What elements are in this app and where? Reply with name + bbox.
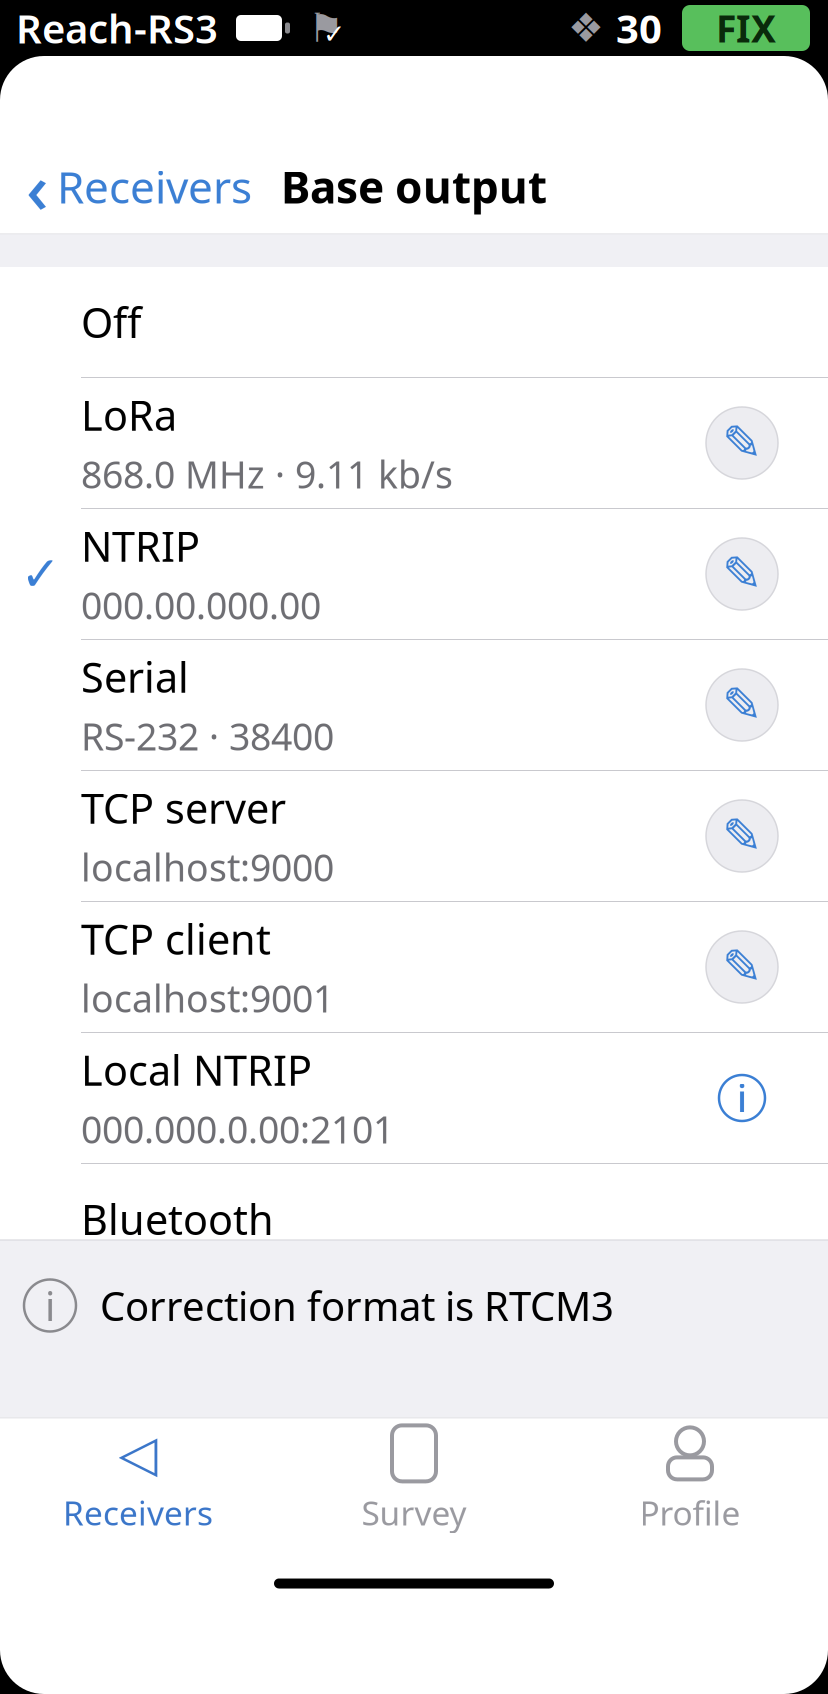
button[interactable]: ✓ <box>0 509 828 639</box>
staticText: ⚑ <box>308 5 344 51</box>
button[interactable]: Receivers <box>0 1418 276 1540</box>
staticText: Bluetooth <box>81 1192 274 1246</box>
staticText: i <box>737 1073 747 1123</box>
staticText: ✓ <box>20 547 60 601</box>
staticText: Survey <box>361 1490 466 1535</box>
staticText: ❖ <box>568 5 604 51</box>
staticText: localhost:9001 <box>81 973 334 1023</box>
button[interactable]: Off <box>0 267 828 377</box>
button[interactable]: LoRa <box>0 378 828 508</box>
staticText: Correction format is RTCM3 <box>100 1279 614 1332</box>
staticText: Serial <box>81 649 189 704</box>
staticText: Profile <box>639 1490 740 1535</box>
button[interactable]: Profile <box>552 1418 828 1540</box>
staticText: i <box>45 1279 55 1332</box>
staticText: ‹ <box>26 140 49 233</box>
staticText: ✎ <box>722 940 762 994</box>
button[interactable]: Serial <box>0 640 828 770</box>
staticText: 000.00.000.00 <box>81 580 321 630</box>
staticText: RS-232 · 38400 <box>81 711 334 761</box>
button[interactable]: TCP client <box>0 902 828 1032</box>
staticText: 868.0 MHz · 9.11 kb/s <box>81 449 453 499</box>
staticText: Reach-RS3 <box>16 1 218 54</box>
staticText: Base output <box>281 157 547 216</box>
staticText: ✎ <box>722 809 762 863</box>
staticText: ✎ <box>722 547 762 601</box>
staticText: 000.000.0.00:2101 <box>81 1104 394 1154</box>
staticText: TCP client <box>81 911 271 966</box>
staticText: 30 <box>616 1 662 54</box>
staticText: LoRa <box>81 387 177 442</box>
staticText: FIX <box>716 3 776 53</box>
staticText: Off <box>81 295 141 349</box>
button[interactable]: Local NTRIP <box>0 1033 828 1163</box>
staticText: ✓ <box>323 19 345 49</box>
staticText: Receivers <box>63 1490 213 1535</box>
button[interactable]: Survey <box>276 1418 552 1540</box>
staticText: NTRIP <box>81 518 200 573</box>
staticText: ✎ <box>722 416 762 470</box>
staticText: Receivers <box>57 157 252 216</box>
button[interactable]: Bluetooth <box>0 1164 828 1274</box>
staticText: ◁ <box>118 1425 157 1482</box>
button[interactable]: TCP server <box>0 771 828 901</box>
staticText: localhost:9000 <box>81 842 334 892</box>
button[interactable]: ‹ <box>0 149 264 223</box>
staticText: ✎ <box>722 678 762 732</box>
button[interactable]: FIX <box>682 5 810 51</box>
staticText: TCP server <box>81 780 286 835</box>
staticText: Local NTRIP <box>81 1042 312 1097</box>
